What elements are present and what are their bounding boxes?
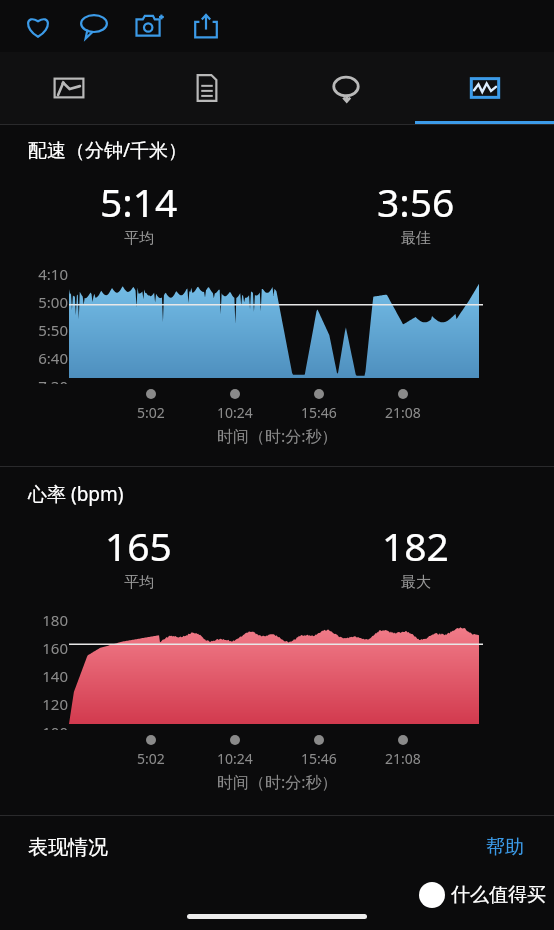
staticText: 160 (42, 638, 68, 658)
staticText: 帮助 (486, 835, 524, 859)
staticText: 21:08 (385, 403, 421, 422)
staticText: 10:24 (217, 403, 253, 422)
staticText: 心率 (bpm) (28, 481, 124, 507)
button[interactable]: Laps (276, 52, 415, 124)
button[interactable]: Add photo (130, 6, 170, 46)
staticText: 182 (382, 519, 449, 572)
staticText: 10:24 (217, 749, 253, 768)
staticText: 什么值得买 (451, 883, 546, 907)
staticText: 5:00 (38, 292, 68, 312)
staticText: 表现情况 (28, 835, 108, 860)
staticText: 平均 (124, 573, 154, 592)
staticText: 6:40 (38, 348, 68, 368)
staticText: 140 (42, 666, 68, 686)
staticText: 180 (42, 610, 68, 630)
staticText: 时间（时:分:秒） (217, 425, 338, 447)
button[interactable]: 表现情况 (0, 816, 554, 878)
button[interactable]: Share (186, 6, 226, 46)
staticText: 平均 (124, 229, 154, 248)
staticText: 配速（分钟/千米） (28, 137, 188, 163)
button[interactable]: Charts (415, 52, 554, 124)
staticText: 120 (42, 694, 68, 714)
button[interactable]: Comment (74, 6, 114, 46)
staticText: 5:02 (137, 749, 165, 768)
staticText: 5:50 (38, 320, 68, 340)
staticText: 15:46 (301, 403, 337, 422)
staticText: 7:30 (38, 376, 68, 384)
staticText: 15:46 (301, 749, 337, 768)
staticText: 100 (42, 722, 68, 730)
staticText: 21:08 (385, 749, 421, 768)
staticText: 4:10 (38, 264, 68, 284)
staticText: 最佳 (401, 229, 431, 248)
button[interactable]: 帮助 (478, 829, 532, 865)
button[interactable]: Details (138, 52, 276, 124)
staticText: 时间（时:分:秒） (217, 771, 338, 793)
staticText: 5:02 (137, 403, 165, 422)
staticText: 5:14 (100, 175, 178, 228)
staticText: 3:56 (377, 175, 455, 228)
staticText: 165 (105, 519, 172, 572)
staticText: 最大 (401, 573, 431, 592)
button[interactable]: Map (0, 52, 138, 124)
button[interactable]: Like (18, 6, 58, 46)
